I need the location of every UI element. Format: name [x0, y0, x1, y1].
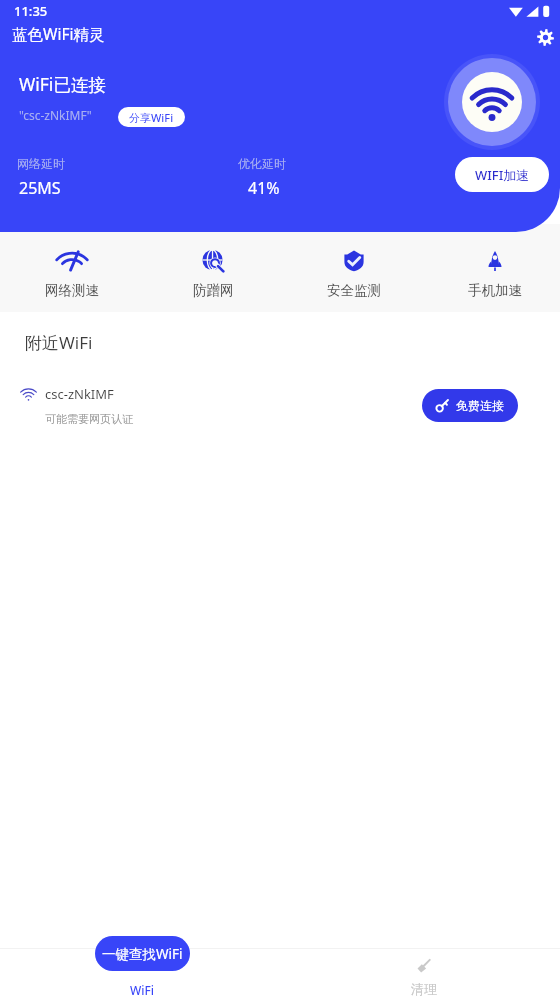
staticText: 清理 — [411, 981, 437, 997]
staticText: 可能需要网页认证 — [45, 412, 133, 426]
staticText: "csc-zNkIMF" — [19, 107, 92, 123]
staticText: 蓝色WiFi精灵 — [12, 23, 105, 44]
button[interactable]: Settings — [533, 25, 557, 49]
staticText: WIFI加速 — [475, 166, 530, 184]
staticText: 11:35 — [14, 2, 48, 20]
staticText: WiFi — [130, 982, 155, 998]
button[interactable]: WIFI加速 — [455, 157, 549, 192]
staticText: 25MS — [19, 177, 61, 199]
button[interactable]: csc-zNkIMF — [0, 376, 560, 434]
button[interactable]: 手机加速 — [445, 232, 545, 322]
staticText: 优化延时 — [238, 156, 286, 171]
button[interactable]: WiFi status — [444, 54, 540, 150]
staticText: 一键查找WiFi — [102, 945, 183, 963]
button[interactable]: 一键查找WiFi — [95, 936, 190, 1003]
staticText: 分享WiFi — [129, 110, 174, 125]
button[interactable]: 网络测速 — [22, 232, 122, 322]
button[interactable]: 分享WiFi — [118, 107, 185, 127]
staticText: WiFi已连接 — [19, 72, 106, 96]
button[interactable]: 免费连接 — [422, 389, 518, 422]
staticText: 41% — [248, 177, 280, 199]
staticText: 网络测速 — [45, 282, 99, 299]
staticText: 手机加速 — [468, 282, 522, 299]
staticText: 附近WiFi — [25, 331, 93, 354]
staticText: 防蹭网 — [193, 282, 234, 299]
button[interactable]: 防蹭网 — [163, 232, 263, 322]
staticText: 免费连接 — [456, 398, 504, 413]
button[interactable]: 清理 — [394, 957, 454, 1003]
staticText: 网络延时 — [17, 156, 65, 171]
button[interactable]: 安全监测 — [304, 232, 404, 322]
staticText: 安全监测 — [327, 282, 381, 299]
staticText: csc-zNkIMF — [45, 385, 114, 403]
